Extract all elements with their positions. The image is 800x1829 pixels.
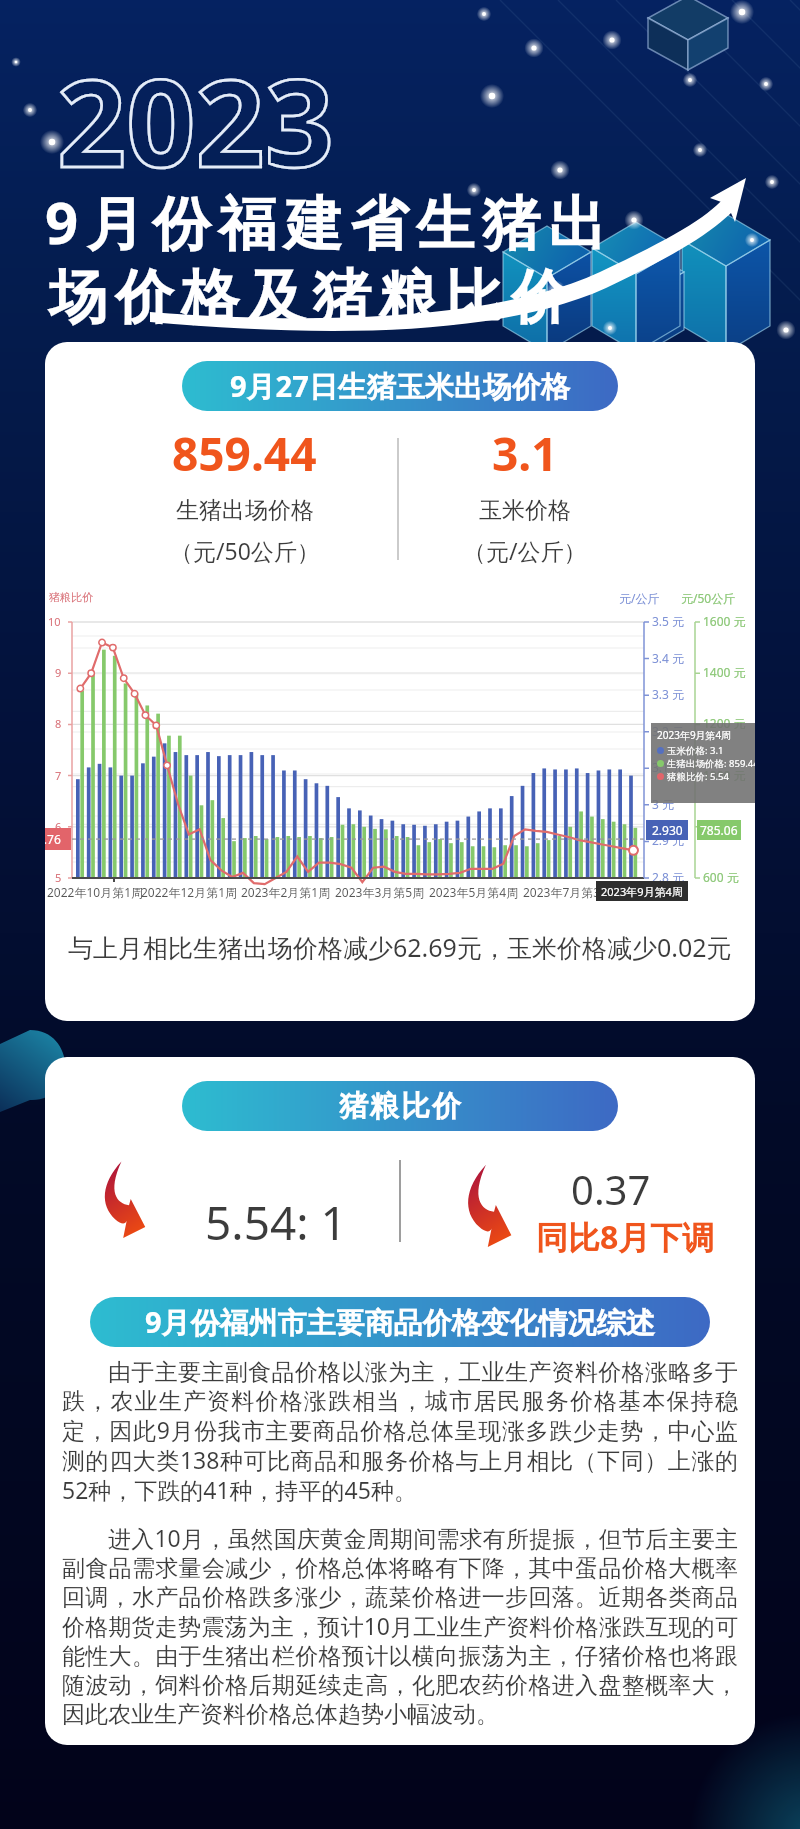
staticText: 元/公斤 <box>619 590 660 606</box>
staticText: 2022年10月第1周 <box>47 884 144 900</box>
staticText: 5.54: 1 <box>205 1191 347 1254</box>
staticText: 1400 元 <box>703 664 746 680</box>
staticText: 2023年9月第4周 <box>601 884 683 899</box>
button[interactable]: 9月27日生猪玉米出场价格 <box>45 342 755 1021</box>
staticText: 3.5 元 <box>652 613 685 629</box>
staticText: 2.8 元 <box>652 869 685 885</box>
staticText: 2023年9月第4周 <box>657 728 732 742</box>
staticText: （元/公斤） <box>463 535 587 566</box>
staticText: 进入10月，虽然国庆黄金周期间需求有所提振，但节后主要主副食品需求量会减少，价格… <box>62 1522 738 1728</box>
staticText: 9月份福建省生猪出 <box>45 182 615 261</box>
staticText: 1600 元 <box>703 613 746 629</box>
staticText: 3.1 元 <box>652 759 685 775</box>
staticText: 2023年3月第5周 <box>335 884 425 900</box>
staticText: 生猪出场价格 <box>176 496 314 525</box>
staticText: 5 <box>55 870 62 885</box>
staticText: 同比8月下调 <box>536 1215 715 1259</box>
staticText: 859.44 <box>172 422 317 485</box>
staticText: 3 元 <box>652 796 674 812</box>
button[interactable]: 9月27日生猪玉米出场价格 <box>182 361 618 411</box>
staticText: 2023年7月第3周 <box>523 884 613 900</box>
staticText: 场价格及猪粮比价 <box>45 261 573 334</box>
staticText: 2.9 元 <box>652 832 685 848</box>
staticText: 2023年 <box>617 884 657 900</box>
staticText: 玉米价格 <box>479 496 571 525</box>
staticText: 玉米价格: 3.1 <box>667 744 724 757</box>
staticText: 猪粮比价: 5.54 <box>667 770 729 783</box>
staticText: 2023年2月第1周 <box>241 884 331 900</box>
staticText: 6 <box>55 819 62 834</box>
staticText: 元/50公斤 <box>681 590 736 606</box>
staticText: 800 元 <box>703 818 739 834</box>
staticText: 3.2 元 <box>652 723 685 739</box>
staticText: 600 元 <box>703 869 739 885</box>
staticText: 9 <box>55 665 62 680</box>
staticText: 生猪出场价格: 859.44 <box>667 757 755 770</box>
staticText: 3.3 元 <box>652 686 685 702</box>
staticText: 785.06 <box>700 822 738 838</box>
staticText: 2.930 <box>652 822 683 838</box>
staticText: 2022年12月第1周 <box>141 884 238 900</box>
staticText: 3.4 元 <box>652 650 685 666</box>
button[interactable]: 猪粮比价 <box>182 1081 618 1131</box>
staticText: 1200 元 <box>703 715 746 731</box>
staticText: 猪粮比价 <box>338 1088 462 1125</box>
staticText: 1000 元 <box>703 767 746 783</box>
staticText: 0.37 <box>571 1162 651 1216</box>
staticText: 10 <box>48 614 61 629</box>
button[interactable]: 9月份福州市主要商品价格变化情况综述 <box>90 1297 710 1347</box>
staticText: 2023 <box>57 38 334 203</box>
staticText: 由于主要主副食品价格以涨为主，工业生产资料价格涨略多于跌，农业生产资料价格涨跌相… <box>62 1358 738 1506</box>
staticText: 9月27日生猪玉米出场价格 <box>230 366 570 406</box>
staticText: 7 <box>55 768 62 783</box>
staticText: 与上月相比生猪出场价格减少62.69元，玉米价格减少0.02元 <box>68 930 732 964</box>
staticText: 9月份福州市主要商品价格变化情况综述 <box>145 1302 655 1342</box>
staticText: 5.76 <box>45 831 61 847</box>
staticText: （元/50公斤） <box>170 535 320 566</box>
staticText: 3.1 <box>492 422 558 485</box>
staticText: 8 <box>55 716 62 731</box>
staticText: 猪粮比价 <box>49 590 93 604</box>
staticText: 2023年5月第4周 <box>429 884 519 900</box>
button[interactable]: 猪粮比价 <box>45 1057 755 1745</box>
